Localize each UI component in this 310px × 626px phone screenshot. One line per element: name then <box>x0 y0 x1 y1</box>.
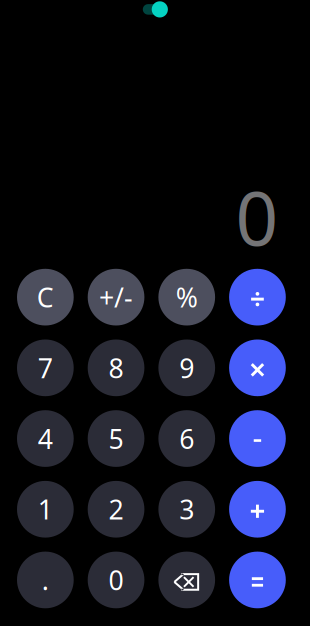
staticText: 5 <box>109 421 124 456</box>
staticText: 6 <box>179 421 194 456</box>
button[interactable]: 2 <box>88 481 144 538</box>
button[interactable]: 1 <box>17 481 74 538</box>
button[interactable]: 3 <box>158 481 215 538</box>
button[interactable]: 7 <box>17 339 74 396</box>
staticText: 3 <box>179 491 194 527</box>
staticText: % <box>176 279 198 315</box>
button[interactable]: Multiply <box>229 339 286 396</box>
button[interactable]: 5 <box>88 410 144 467</box>
button[interactable]: +/- <box>88 269 144 325</box>
staticText: . <box>42 562 49 598</box>
button[interactable]: Divide <box>229 269 286 325</box>
staticText: 0 <box>235 167 278 266</box>
button[interactable]: Delete <box>158 552 215 608</box>
button[interactable]: 0 <box>88 552 144 608</box>
staticText: 1 <box>38 491 53 527</box>
staticText: 4 <box>38 421 53 456</box>
button[interactable]: 6 <box>158 410 215 467</box>
button[interactable]: C <box>17 269 74 325</box>
staticText: C <box>37 279 54 315</box>
button[interactable]: 4 <box>17 410 74 467</box>
staticText: 9 <box>179 350 194 385</box>
button[interactable]: Equals <box>229 552 286 608</box>
staticText: 0 <box>109 562 124 598</box>
button[interactable]: Subtract <box>229 410 286 467</box>
button[interactable]: 8 <box>88 339 144 396</box>
button[interactable]: % <box>158 269 215 325</box>
button[interactable]: . <box>17 552 74 608</box>
staticText: 8 <box>109 350 124 385</box>
staticText: 7 <box>38 350 53 385</box>
button[interactable]: Add <box>229 481 286 538</box>
button[interactable]: 9 <box>158 339 215 396</box>
staticText: 2 <box>109 491 124 527</box>
staticText: +/- <box>99 279 133 315</box>
